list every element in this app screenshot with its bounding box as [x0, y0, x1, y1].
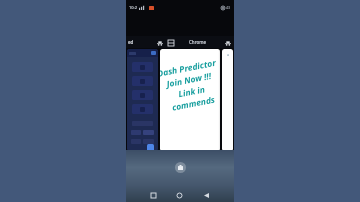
button[interactable]: Incognito [223, 38, 232, 47]
button[interactable]: Capture [175, 162, 186, 173]
button[interactable]: Dash Predictor [160, 49, 220, 151]
staticText: Link in [177, 83, 206, 100]
button[interactable]: ed [128, 39, 134, 45]
staticText: 10:2 [129, 5, 137, 10]
button[interactable] [127, 49, 158, 151]
button[interactable]: Recent apps [140, 188, 166, 202]
button[interactable] [222, 49, 233, 151]
staticText: Join Now !!! [165, 70, 212, 90]
button[interactable]: Chrome [189, 39, 207, 45]
staticText: 43 [226, 5, 231, 10]
staticText: Dash Predictor [160, 57, 217, 80]
button[interactable]: Home [166, 188, 193, 202]
button[interactable]: Incognito tabs [155, 38, 164, 47]
button[interactable]: Back [193, 188, 220, 202]
staticText: commends [171, 94, 216, 114]
button[interactable]: Tab groups [166, 38, 175, 47]
